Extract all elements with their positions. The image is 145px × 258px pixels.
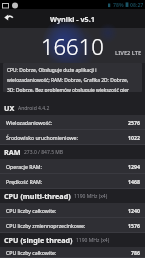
staticText: CPU (multi-thread) <box>4 191 71 201</box>
staticText: 786 <box>131 249 140 256</box>
button[interactable]: CPU liczby zmiennoprzecinkowe: <box>0 218 145 232</box>
staticText: Prędkość RAM: <box>6 178 43 185</box>
staticText: CPU (single thread) <box>4 235 73 245</box>
button[interactable]: Prędkość RAM: <box>0 174 145 188</box>
staticText: UX <box>4 103 15 113</box>
button[interactable]: CPU liczby całkowite: <box>0 247 145 257</box>
staticText: Operacje RAM: <box>6 163 42 170</box>
staticText: 78% <box>113 1 124 8</box>
staticText: 1576 <box>128 222 140 229</box>
staticText: Android 4.4.2 <box>18 105 50 112</box>
staticText: Wyniki - v5.1 <box>50 14 95 24</box>
staticText: CPU liczby zmiennoprzecinkowe: <box>6 222 86 229</box>
button[interactable]: CPU (multi-thread) <box>0 189 145 203</box>
button[interactable]: RAM <box>0 145 145 159</box>
staticText: 3D: Dobrze, Bez problemów obsługuje więk… <box>7 87 130 92</box>
staticText: 273.0 / 847.5 MB <box>24 149 64 156</box>
button[interactable]: CPU liczby całkowite: <box>0 203 145 217</box>
button[interactable]: Środowisko uruchomieniowe: <box>0 130 145 144</box>
staticText: RAM <box>4 147 21 157</box>
staticText: 2576 <box>128 119 140 126</box>
staticText: 08:27 <box>130 1 144 8</box>
button[interactable]: Back <box>0 9 18 27</box>
staticText: 1468 <box>128 178 140 185</box>
staticText: wielozadaniowość; RAM: Dobrze, Grafika 2… <box>7 77 139 84</box>
staticText: 1190 MHz (x4) <box>74 193 108 200</box>
staticText: 1240 <box>128 207 140 214</box>
staticText: 1190 MHz (x4) <box>76 237 110 244</box>
button[interactable]: CPU (single thread) <box>0 233 145 247</box>
staticText: CPU: Dobrze, Obsługuje duże aplikacji i <box>7 67 97 74</box>
staticText: LIVE2 LTE <box>115 49 142 57</box>
staticText: CPU liczby całkowite: <box>6 249 57 256</box>
staticText: Środowisko uruchomieniowe: <box>6 134 78 141</box>
button[interactable]: UX <box>0 101 145 115</box>
staticText: 1294 <box>128 163 140 170</box>
staticText: 16610 <box>41 31 104 61</box>
staticText: 1022 <box>128 134 140 141</box>
button[interactable]: Operacje RAM: <box>0 159 145 173</box>
staticText: CPU liczby całkowite: <box>6 207 57 214</box>
staticText: Wielozadaniowość: <box>6 119 53 126</box>
button[interactable]: Wielozadaniowość: <box>0 115 145 129</box>
